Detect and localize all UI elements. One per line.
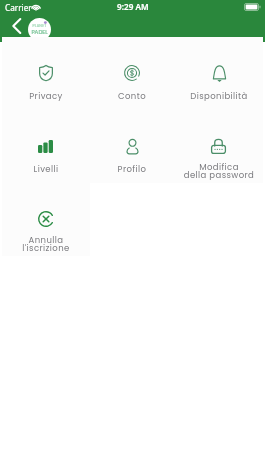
staticText: Conto — [88, 90, 176, 102]
staticText: Carrier — [5, 2, 32, 13]
button[interactable]: Privacy — [2, 37, 90, 110]
staticText: l'iscrizione — [2, 242, 90, 254]
button[interactable]: Annulla — [2, 183, 90, 256]
staticText: Profilo — [88, 163, 176, 175]
staticText: PLANET — [32, 23, 47, 28]
button[interactable]: Profilo — [88, 110, 176, 183]
staticText: Annulla — [2, 234, 90, 246]
staticText: Privacy — [2, 90, 90, 102]
button[interactable]: Disponibilità — [175, 37, 263, 110]
staticText: della password — [175, 169, 263, 181]
staticText: PADEL — [31, 28, 48, 36]
button[interactable]: Modifica — [175, 110, 263, 183]
staticText: 9:29 AM — [117, 1, 149, 12]
button[interactable]: Livelli — [2, 110, 90, 183]
staticText: Disponibilità — [175, 90, 263, 102]
button[interactable]: Conto — [88, 37, 176, 110]
button[interactable]: Back — [7, 17, 27, 37]
staticText: Livelli — [2, 163, 90, 175]
button[interactable]: Planet Padel logo — [28, 18, 51, 41]
staticText: Modifica — [175, 161, 263, 173]
